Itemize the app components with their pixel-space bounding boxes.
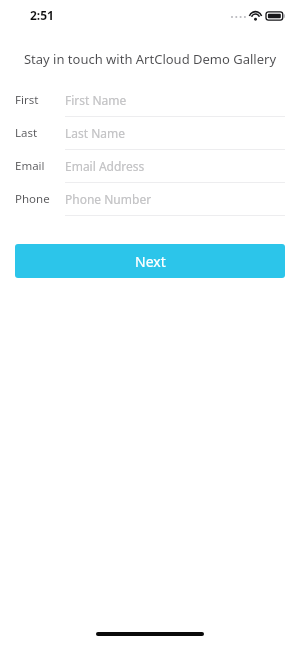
staticText: Phone Number bbox=[65, 191, 152, 207]
other: Home indicator bbox=[96, 632, 204, 636]
button[interactable]: Next bbox=[15, 244, 285, 278]
staticText: 2:51 bbox=[30, 7, 54, 23]
staticText: Last bbox=[15, 125, 38, 141]
staticText: Next bbox=[135, 252, 166, 271]
staticText: Stay in touch with ArtCloud Demo Gallery bbox=[10, 50, 290, 68]
staticText: Email Address bbox=[65, 158, 145, 174]
button[interactable]: Last bbox=[0, 117, 300, 149]
button[interactable]: First bbox=[0, 84, 300, 116]
staticText: Last Name bbox=[65, 125, 126, 141]
staticText: First Name bbox=[65, 92, 127, 108]
staticText: Phone bbox=[15, 191, 50, 207]
staticText: First bbox=[15, 92, 39, 108]
button[interactable]: Email bbox=[0, 150, 300, 182]
button[interactable]: Phone bbox=[0, 183, 300, 215]
staticText: Email bbox=[15, 158, 45, 174]
